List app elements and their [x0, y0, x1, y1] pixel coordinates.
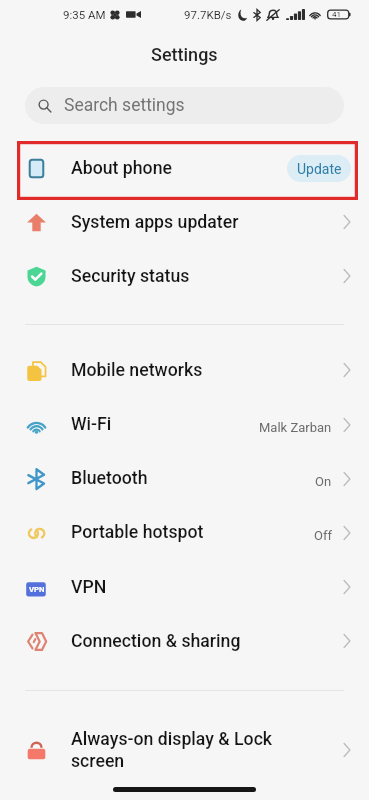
- staticText: 97.7KB/s: [184, 8, 232, 21]
- button[interactable]: VPN: [0, 560, 369, 614]
- staticText: Security status: [71, 266, 190, 287]
- button[interactable]: Search settings: [25, 87, 344, 124]
- staticText: Wi-Fi: [71, 414, 112, 435]
- staticText: Portable hotspot: [71, 522, 204, 543]
- button[interactable]: Always-on display & Lock screen: [0, 723, 369, 777]
- staticText: Settings: [151, 44, 218, 65]
- button[interactable]: Connection & sharing: [0, 614, 369, 668]
- button[interactable]: Bluetooth: [0, 451, 369, 505]
- staticText: Always-on display & Lock screen: [71, 729, 273, 771]
- staticText: Update: [297, 161, 342, 177]
- button[interactable]: Portable hotspot: [0, 505, 369, 559]
- staticText: Bluetooth: [71, 468, 148, 489]
- button[interactable]: Update: [287, 155, 351, 182]
- staticText: On: [315, 474, 332, 489]
- staticText: Off: [314, 528, 332, 543]
- staticText: Malk Zarban: [259, 420, 332, 435]
- button[interactable]: Security status: [0, 249, 369, 303]
- staticText: VPN: [71, 577, 107, 598]
- staticText: VPN: [29, 585, 45, 594]
- button[interactable]: System apps updater: [0, 195, 369, 249]
- button[interactable]: Wi-Fi: [0, 397, 369, 451]
- staticText: 41: [332, 10, 341, 19]
- staticText: Mobile networks: [71, 360, 203, 381]
- staticText: 9:35 AM: [63, 8, 106, 21]
- staticText: System apps updater: [71, 212, 239, 233]
- staticText: Connection & sharing: [71, 631, 241, 652]
- staticText: About phone: [71, 158, 172, 179]
- button[interactable]: About phone: [0, 141, 369, 195]
- button[interactable]: Mobile networks: [0, 343, 369, 397]
- staticText: Search settings: [64, 95, 185, 116]
